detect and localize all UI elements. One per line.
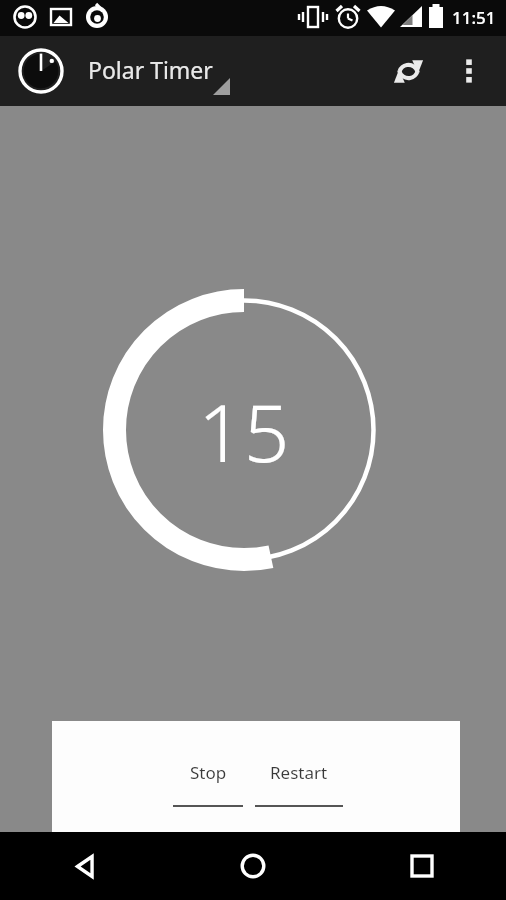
staticText: Polar Timer bbox=[88, 54, 213, 85]
button[interactable]: Back bbox=[0, 832, 168, 900]
button[interactable]: Refresh bbox=[380, 43, 436, 99]
button[interactable]: Home bbox=[168, 832, 337, 900]
button[interactable]: More options bbox=[445, 47, 493, 95]
staticText: Restart bbox=[270, 761, 328, 784]
button[interactable]: Restart bbox=[255, 761, 343, 807]
button[interactable]: Recent apps bbox=[337, 832, 506, 900]
button[interactable]: Polar Timer bbox=[14, 44, 68, 98]
button[interactable]: Stop bbox=[173, 761, 243, 807]
staticText: Stop bbox=[190, 761, 227, 784]
staticText: 11:51 bbox=[452, 6, 496, 29]
staticText: 15 bbox=[198, 376, 290, 485]
